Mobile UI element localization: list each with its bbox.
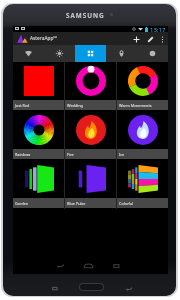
button[interactable]: Places — [106, 45, 137, 62]
button[interactable]: Edit — [143, 33, 157, 45]
button[interactable]: Wedding — [65, 62, 116, 111]
button[interactable]: Rainbow — [13, 111, 64, 160]
button[interactable]: Home — [74, 259, 102, 272]
button[interactable]: Back — [119, 282, 137, 294]
staticText: 13:17 — [150, 26, 166, 32]
staticText: Garden — [15, 201, 29, 206]
button[interactable]: Home — [79, 283, 104, 291]
button[interactable]: Grid — [75, 45, 106, 62]
button[interactable]: Colorful — [117, 160, 168, 209]
staticText: Fire — [67, 152, 74, 157]
button[interactable]: Garden — [13, 160, 64, 209]
button[interactable]: Ice — [117, 111, 168, 160]
staticText: Blue Pulse — [67, 201, 86, 206]
button[interactable]: Blue Pulse — [65, 160, 116, 209]
button[interactable]: Recent apps — [46, 282, 64, 294]
button[interactable]: Add — [129, 33, 143, 45]
staticText: Just Red — [15, 103, 30, 108]
button[interactable]: Settings — [44, 45, 75, 62]
button[interactable]: Scenes — [137, 45, 168, 62]
button[interactable]: Back — [46, 259, 74, 272]
staticText: Warm Movements — [119, 103, 152, 108]
button[interactable]: Fire — [65, 111, 116, 160]
button[interactable]: Warm Movements — [117, 62, 168, 111]
staticText: AsteraApp™ — [30, 35, 58, 42]
button[interactable]: Network — [13, 45, 44, 62]
button[interactable]: Just Red — [13, 62, 64, 111]
staticText: Rainbow — [15, 152, 31, 157]
button[interactable]: More options — [157, 33, 167, 45]
staticText: SAMSUNG — [66, 11, 105, 20]
button[interactable]: Recent apps — [102, 259, 130, 272]
staticText: Ice — [119, 152, 125, 157]
staticText: Colorful — [119, 201, 134, 206]
staticText: Wedding — [67, 103, 83, 108]
